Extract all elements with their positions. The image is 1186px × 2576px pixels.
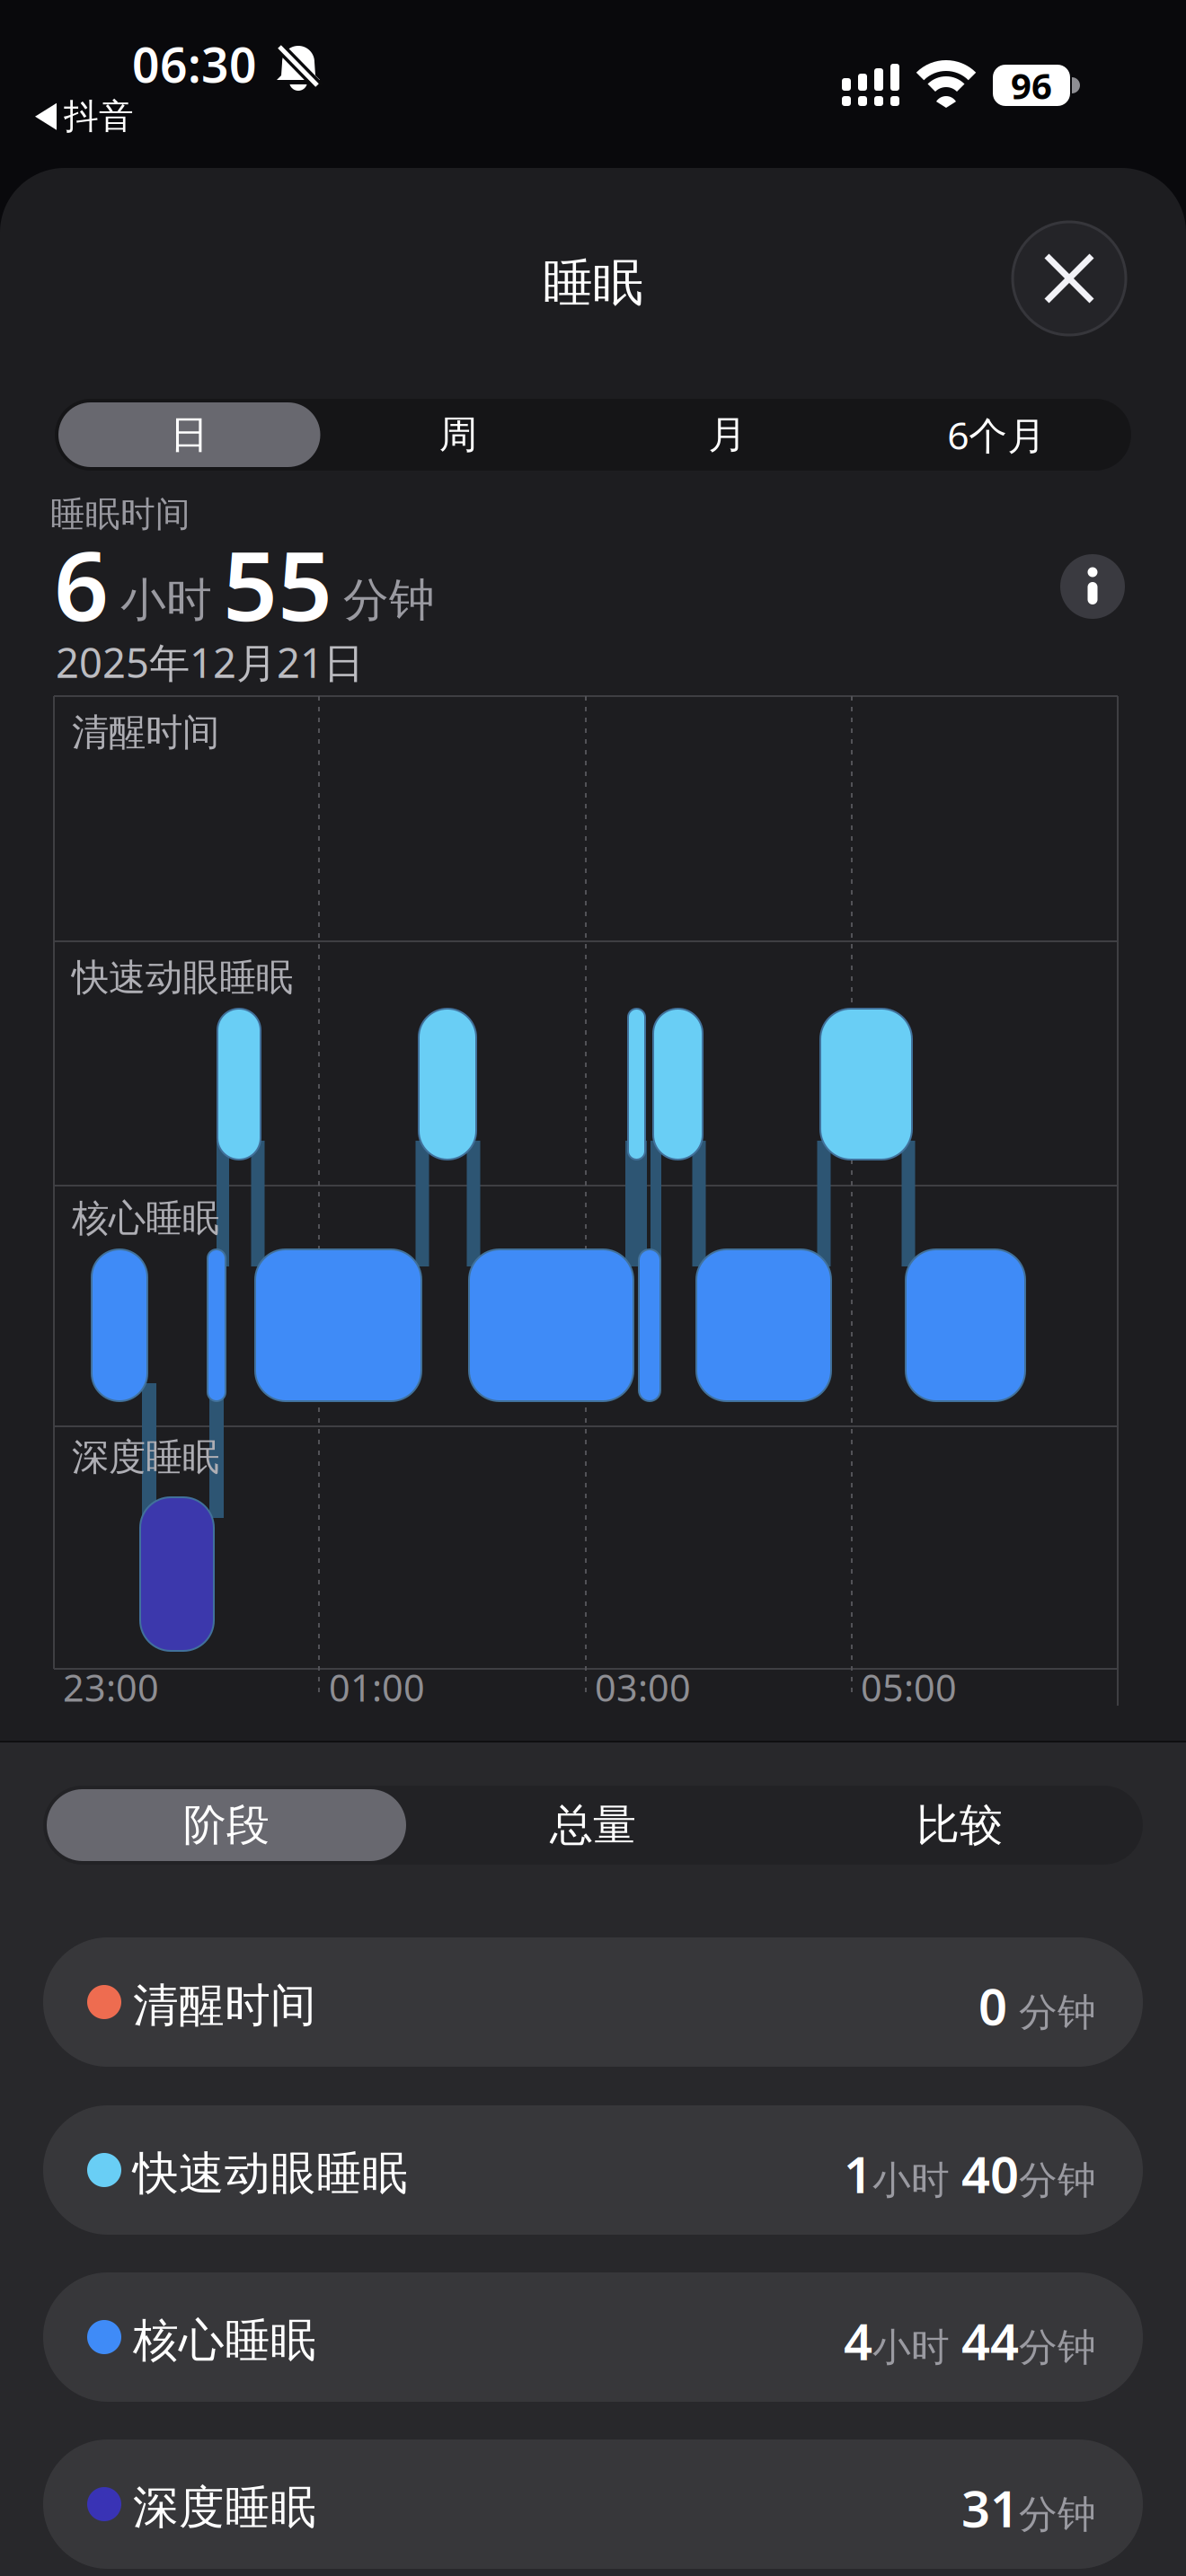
button[interactable]: 信息 [1060, 554, 1125, 619]
staticText: 分钟 [1007, 1989, 1096, 2036]
button[interactable]: 核心睡眠 [43, 2272, 1143, 2402]
staticText: 小时 [872, 2157, 961, 2204]
staticText: 6 [54, 520, 109, 647]
staticText: 快速动眼睡眠 [133, 2146, 408, 2202]
staticText: 分钟 [1019, 2324, 1096, 2371]
staticText: 总量 [550, 1799, 636, 1852]
staticText: 深度睡眠 [133, 2480, 316, 2536]
button[interactable]: 日 [55, 399, 324, 471]
staticText: 40 [961, 2140, 1019, 2207]
staticText: 4 [844, 2307, 872, 2374]
button[interactable]: 周 [324, 399, 593, 471]
staticText: 6个月 [947, 409, 1046, 460]
staticText: 01:00 [329, 1663, 425, 1712]
staticText: 比较 [916, 1799, 1003, 1852]
staticText: 月 [708, 411, 747, 458]
staticText: 23:00 [63, 1663, 159, 1712]
button[interactable]: 阶段 [43, 1786, 410, 1865]
button[interactable]: 快速动眼睡眠 [43, 2105, 1143, 2235]
staticText: 快速动眼睡眠 [72, 955, 293, 1000]
staticText: 44 [961, 2307, 1019, 2374]
button[interactable]: 深度睡眠 [43, 2439, 1143, 2569]
staticText: 0 [978, 1972, 1007, 2039]
staticText: 2025年12月21日 [56, 635, 364, 689]
staticText: 06:30 [132, 32, 257, 96]
staticText: 分钟 [1019, 2491, 1096, 2538]
button[interactable]: 关闭 [1013, 222, 1126, 335]
staticText: 阶段 [183, 1799, 270, 1852]
button[interactable]: 比较 [776, 1786, 1143, 1865]
staticText: 1 [844, 2140, 872, 2207]
staticText: 清醒时间 [133, 1978, 316, 2034]
staticText: 分钟 [343, 572, 435, 628]
staticText: 小时 [120, 572, 212, 628]
button[interactable]: 6个月 [862, 399, 1131, 471]
staticText: 03:00 [595, 1663, 691, 1712]
button[interactable]: 总量 [410, 1786, 776, 1865]
staticText: 清醒时间 [72, 710, 219, 755]
button[interactable]: 月 [593, 399, 862, 471]
staticText: 96 [1011, 61, 1052, 109]
staticText: 31 [961, 2474, 1019, 2541]
staticText: 核心睡眠 [133, 2313, 316, 2369]
staticText: 核心睡眠 [72, 1195, 219, 1241]
button[interactable]: 清醒时间 [43, 1937, 1143, 2067]
staticText: 分钟 [1019, 2157, 1096, 2204]
staticText: 小时 [872, 2324, 961, 2371]
button[interactable]: 返回抖音 [35, 95, 134, 138]
staticText: 05:00 [861, 1663, 957, 1712]
staticText: 55 [223, 520, 332, 647]
staticText: 抖音 [64, 95, 134, 138]
staticText: 睡眠时间 [50, 493, 190, 536]
staticText: 日 [170, 411, 209, 458]
staticText: 周 [439, 411, 478, 458]
staticText: 睡眠 [543, 252, 643, 314]
staticText: 深度睡眠 [72, 1434, 219, 1480]
